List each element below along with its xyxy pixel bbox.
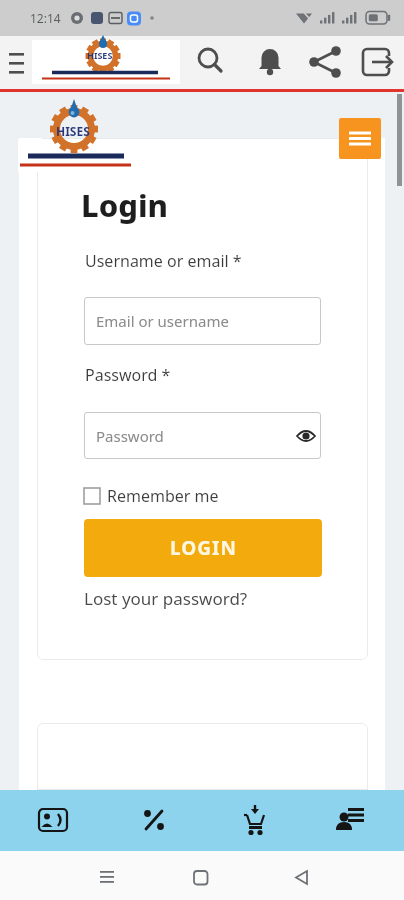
staticText: Email or username — [96, 311, 229, 331]
staticText: HISES — [87, 49, 113, 61]
button[interactable] — [360, 46, 398, 80]
button[interactable] — [184, 859, 218, 893]
button[interactable] — [286, 859, 320, 893]
button[interactable]: Email or username — [84, 297, 321, 345]
button[interactable] — [36, 803, 70, 837]
button[interactable] — [90, 859, 124, 893]
staticText: Password — [96, 426, 164, 446]
staticText: Username or email * — [85, 250, 242, 272]
staticText: Lost your password? — [84, 587, 248, 610]
staticText: HISES — [56, 123, 90, 139]
staticText: 12:14 — [30, 10, 61, 26]
button[interactable] — [334, 803, 368, 837]
staticText: Login — [81, 184, 169, 226]
button[interactable] — [253, 46, 287, 80]
button[interactable] — [137, 803, 171, 837]
button[interactable]: LOGIN — [84, 519, 322, 577]
button[interactable]: Remember me — [84, 485, 269, 507]
button[interactable]: Password — [84, 412, 321, 459]
button[interactable] — [194, 46, 228, 80]
button[interactable] — [4, 46, 34, 82]
button[interactable]: HISES — [32, 40, 180, 84]
staticText: Remember me — [107, 485, 219, 507]
button[interactable]: Lost your password? — [84, 587, 248, 610]
button[interactable] — [339, 118, 381, 159]
staticText: LOGIN — [170, 535, 237, 561]
button[interactable] — [238, 803, 272, 837]
button[interactable] — [308, 46, 342, 80]
staticText: Password * — [85, 364, 171, 386]
